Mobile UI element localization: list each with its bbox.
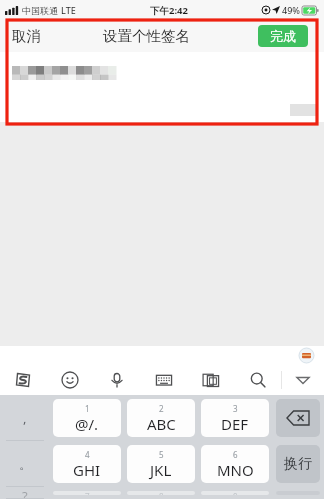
button[interactable]: Voice input [93,365,140,395]
button[interactable]: Sogou input [0,365,46,395]
staticText: 9 [233,491,238,495]
staticText: 4 [85,449,90,460]
button[interactable]: Clipboard [187,365,234,395]
button[interactable]: Sticker shop [299,348,314,363]
button[interactable]: ? [0,487,50,499]
button[interactable]: 4 [53,445,121,483]
staticText: 5 [159,449,164,460]
button[interactable]: 1 [53,399,121,437]
button[interactable]: Search [234,365,281,395]
button[interactable]: 9 [201,491,269,495]
staticText: JKL [150,460,172,480]
staticText: DEF [221,414,249,434]
staticText: 49% [282,4,300,16]
button[interactable]: 。 [0,441,50,487]
staticText: 6 [233,449,238,460]
staticText: GHI [73,460,101,480]
staticText: ? [22,487,28,499]
button[interactable]: Enter [276,445,320,483]
button[interactable]: , [0,395,50,441]
staticText: ABC [147,414,176,434]
button[interactable]: 6 [201,445,269,483]
staticText: 1 [85,403,90,414]
button[interactable]: 5 [127,445,195,483]
button[interactable]: 8 [127,491,195,495]
staticText: , [23,409,27,427]
staticText: MNO [217,460,254,480]
staticText: 8 [159,491,164,495]
button[interactable]: Hide keyboard [282,365,324,395]
staticText: LTE [61,4,76,16]
button[interactable] [0,52,324,122]
button[interactable]: 完成 [258,25,308,47]
staticText: 完成 [270,28,296,44]
button[interactable]: Keyboard layout [140,365,187,395]
button[interactable]: 2 [127,399,195,437]
staticText: @/. [75,414,99,434]
button[interactable]: Emoji [46,365,93,395]
button[interactable]: 7 [53,491,121,495]
staticText: 7 [85,491,90,495]
staticText: 2 [159,403,164,414]
button[interactable]: Delete [276,399,320,437]
staticText: 3 [233,403,238,414]
staticText: 中国联通 [22,5,58,16]
staticText: 设置个性签名 [103,27,190,45]
button[interactable]: 取消 [0,21,53,51]
button[interactable]: 3 [201,399,269,437]
staticText: 换行 [284,455,312,473]
staticText: 。 [19,456,32,472]
staticText: 下午2:42 [150,4,188,17]
